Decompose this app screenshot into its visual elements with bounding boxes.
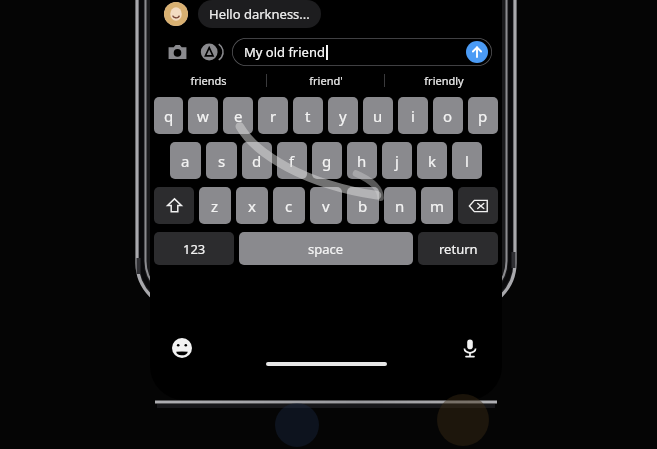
staticText: r [270,106,277,126]
button[interactable]: Delete [458,187,498,224]
staticText: z [211,196,219,216]
button[interactable]: o [433,97,463,134]
button[interactable]: Emoji [172,338,192,358]
button[interactable]: y [328,97,358,134]
button[interactable]: return [418,232,498,265]
staticText: v [322,196,330,216]
button[interactable]: friendly [385,67,502,93]
staticText: a [181,151,190,171]
staticText: f [289,151,295,171]
staticText: w [197,106,209,126]
button[interactable]: Hello darkness... [198,0,321,28]
button[interactable]: Shift [154,187,194,224]
button[interactable]: My old friend [232,38,492,66]
staticText: c [285,196,293,216]
button[interactable]: friend' [267,67,384,93]
staticText: b [358,196,368,216]
button[interactable]: q [154,97,183,134]
button[interactable]: w [188,97,218,134]
button[interactable]: Dictation [460,338,480,358]
staticText: n [395,196,405,216]
staticText: g [322,151,332,171]
staticText: o [443,106,453,126]
button[interactable]: c [273,187,305,224]
staticText: i [411,106,415,126]
staticText: l [465,151,469,171]
staticText: q [164,106,174,126]
staticText: y [339,106,347,126]
button[interactable]: u [363,97,393,134]
button[interactable]: friends [150,67,266,93]
button[interactable]: a [170,142,201,179]
staticText: x [248,196,256,216]
button[interactable]: App Store [197,39,223,65]
button[interactable]: e [223,97,253,134]
staticText: j [395,151,399,171]
staticText: m [430,196,445,216]
button[interactable]: r [258,97,288,134]
button[interactable]: b [347,187,379,224]
staticText: friends [190,73,227,88]
button[interactable]: i [398,97,428,134]
button[interactable]: p [468,97,498,134]
staticText: s [218,151,226,171]
button[interactable]: k [417,142,447,179]
button[interactable]: m [421,187,453,224]
button[interactable]: 123 [154,232,234,265]
staticText: p [478,106,488,126]
button[interactable]: Contact avatar [164,2,188,26]
staticText: k [428,151,437,171]
staticText: h [357,151,367,171]
button[interactable]: d [242,142,272,179]
button[interactable]: j [382,142,412,179]
button[interactable]: h [347,142,377,179]
staticText: e [234,106,243,126]
staticText: space [308,240,344,258]
button[interactable]: Send [466,41,488,63]
button[interactable]: v [310,187,342,224]
staticText: Hello darkness... [209,5,310,23]
staticText: My old friend [244,43,325,61]
button[interactable]: t [293,97,323,134]
button[interactable]: Camera [164,39,190,65]
button[interactable]: space [239,232,413,265]
button[interactable]: n [384,187,416,224]
staticText: return [439,240,478,258]
staticText: friendly [424,73,464,88]
staticText: u [373,106,383,126]
button[interactable]: x [236,187,268,224]
button[interactable]: z [199,187,231,224]
button[interactable]: s [206,142,237,179]
staticText: d [252,151,262,171]
button[interactable]: f [277,142,307,179]
staticText: t [305,106,311,126]
button[interactable]: g [312,142,342,179]
button[interactable]: l [452,142,482,179]
staticText: friend' [309,73,343,88]
staticText: 123 [183,240,206,258]
